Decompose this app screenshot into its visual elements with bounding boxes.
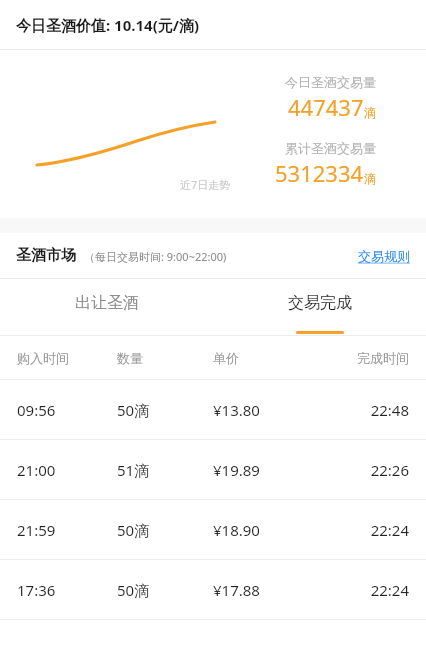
staticText: 数量 [117, 350, 213, 366]
staticText: 完成时间 [318, 350, 409, 366]
staticText: 50滴 [117, 580, 213, 600]
staticText: 购入时间 [17, 350, 117, 366]
staticText: ¥13.80 [213, 400, 318, 420]
button[interactable]: 21:00 [0, 440, 426, 499]
staticText: 22:24 [318, 580, 409, 600]
staticText: 50滴 [117, 400, 213, 420]
staticText: 50滴 [117, 520, 213, 540]
staticText: （每日交易时间: 9:00~22:00) [84, 249, 227, 264]
button[interactable]: 交易规则 [358, 248, 426, 264]
staticText: 21:59 [17, 520, 117, 540]
staticText: 5312334 [275, 158, 364, 188]
staticText: 滴 [364, 105, 376, 120]
staticText: 今日圣酒交易量 [285, 74, 376, 90]
staticText: 圣酒市场 [16, 246, 76, 265]
button[interactable]: 21:59 [0, 500, 426, 559]
staticText: 近7日走势 [180, 177, 231, 192]
button[interactable]: 17:36 [0, 560, 426, 619]
staticText: 累计圣酒交易量 [285, 140, 376, 156]
staticText: ¥19.89 [213, 460, 318, 480]
staticText: 22:48 [318, 400, 409, 420]
staticText: 447437 [288, 92, 364, 122]
staticText: ¥17.88 [213, 580, 318, 600]
staticText: 09:56 [17, 400, 117, 420]
staticText: 滴 [364, 171, 376, 186]
staticText: 出让圣酒 [75, 293, 139, 313]
staticText: 交易完成 [288, 293, 352, 313]
staticText: 交易规则 [358, 248, 410, 264]
staticText: 单价 [213, 350, 318, 366]
staticText: 22:26 [318, 460, 409, 480]
staticText: 51滴 [117, 460, 213, 480]
staticText: 17:36 [17, 580, 117, 600]
button[interactable]: 交易完成 [213, 279, 426, 335]
button[interactable]: 09:56 [0, 380, 426, 439]
staticText: 21:00 [17, 460, 117, 480]
staticText: ¥18.90 [213, 520, 318, 540]
staticText: 22:24 [318, 520, 409, 540]
staticText: 今日圣酒价值: 10.14(元/滴) [16, 15, 200, 35]
button[interactable]: 出让圣酒 [0, 279, 213, 335]
